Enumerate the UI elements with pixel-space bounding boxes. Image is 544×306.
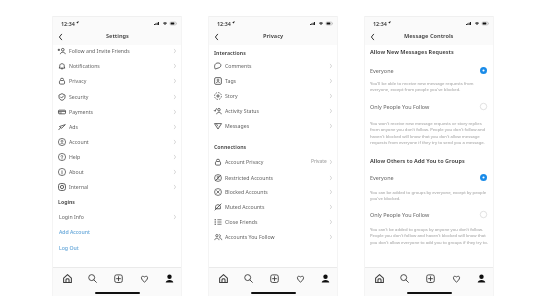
staticText: Message Controls xyxy=(404,32,454,40)
staticText: Logins xyxy=(58,198,75,205)
button[interactable]: Messages xyxy=(208,118,338,133)
staticText: Tags xyxy=(225,77,237,84)
staticText: About xyxy=(69,168,84,175)
button[interactable]: Back xyxy=(54,30,67,43)
button[interactable]: Back xyxy=(366,30,379,43)
button[interactable]: Notifications xyxy=(52,58,182,73)
button[interactable]: Back xyxy=(210,30,223,43)
staticText: Accounts You Follow xyxy=(225,233,275,240)
staticText: Payments xyxy=(69,108,94,115)
staticText: You won't receive new message requests o… xyxy=(370,120,482,126)
button[interactable]: Blocked Accounts xyxy=(208,184,338,199)
button[interactable]: Search xyxy=(398,272,410,284)
button[interactable]: Login Info xyxy=(52,209,182,224)
staticText: Internal xyxy=(69,183,89,190)
staticText: Messages xyxy=(225,122,250,129)
staticText: you don't allow everyone to add you to g… xyxy=(370,239,489,245)
button[interactable]: Tags xyxy=(208,73,338,88)
staticText: Private xyxy=(311,158,327,165)
staticText: Close Friends xyxy=(225,218,258,225)
staticText: Activity Status xyxy=(225,107,260,114)
staticText: Allow New Messages Requests xyxy=(370,48,454,55)
button[interactable]: Create xyxy=(268,272,280,284)
staticText: Login Info xyxy=(59,213,84,220)
button[interactable]: Security xyxy=(52,89,182,104)
staticText: you've blocked. xyxy=(370,195,401,201)
button[interactable]: Muted Accounts xyxy=(208,199,338,214)
staticText: Settings xyxy=(106,32,129,40)
staticText: Only People You Follow xyxy=(370,103,430,110)
button[interactable]: Log Out xyxy=(52,240,182,255)
button[interactable]: Internal xyxy=(52,179,182,194)
staticText: Connections xyxy=(214,143,247,150)
button[interactable]: About xyxy=(52,164,182,179)
button[interactable]: Comments xyxy=(208,58,338,73)
staticText: 12:34 xyxy=(217,20,231,27)
staticText: Privacy xyxy=(69,77,87,84)
staticText: 12:34 xyxy=(373,20,387,27)
button[interactable]: Follow and Invite Friends xyxy=(52,43,182,58)
button[interactable]: Activity Status xyxy=(208,103,338,118)
staticText: Comments xyxy=(225,62,252,69)
staticText: Allow Others to Add You to Groups xyxy=(370,157,465,164)
staticText: Follow and Invite Friends xyxy=(69,47,130,54)
staticText: Log Out xyxy=(59,244,79,251)
staticText: Ads xyxy=(69,123,78,130)
button[interactable]: Account Privacy xyxy=(208,154,338,169)
staticText: Everyone xyxy=(370,67,394,74)
button[interactable]: Restricted Accounts xyxy=(208,170,338,185)
button[interactable]: Add Account xyxy=(52,224,182,239)
button[interactable]: Story xyxy=(208,88,338,103)
button[interactable]: Ads xyxy=(52,119,182,134)
button[interactable]: Only People You Follow xyxy=(364,99,494,113)
staticText: Privacy xyxy=(263,32,284,40)
staticText: Muted Accounts xyxy=(225,203,265,210)
staticText: Interactions xyxy=(214,49,246,56)
staticText: Blocked Accounts xyxy=(225,188,268,195)
button[interactable]: Activity xyxy=(294,272,306,284)
staticText: You can be added to groups by everyone, … xyxy=(370,189,487,195)
button[interactable]: Help xyxy=(52,149,182,164)
staticText: Account Privacy xyxy=(225,158,264,165)
button[interactable]: Account xyxy=(52,134,182,149)
staticText: Notifications xyxy=(69,62,100,69)
staticText: Restricted Accounts xyxy=(225,174,274,181)
button[interactable]: Profile xyxy=(475,272,487,284)
button[interactable]: Everyone xyxy=(364,170,494,184)
button[interactable]: Create xyxy=(112,272,124,284)
button[interactable]: Payments xyxy=(52,104,182,119)
staticText: Story xyxy=(225,92,238,99)
button[interactable]: Home xyxy=(61,272,73,284)
staticText: You can't be added to groups by anyone y… xyxy=(370,226,484,232)
button[interactable]: Search xyxy=(242,272,254,284)
staticText: Add Account xyxy=(59,228,90,235)
staticText: Everyone xyxy=(370,174,394,181)
staticText: Help xyxy=(69,153,81,160)
staticText: People you don't follow and haven't bloc… xyxy=(370,232,486,238)
button[interactable]: Activity xyxy=(450,272,462,284)
staticText: You'll be able to receive new message re… xyxy=(370,80,474,86)
button[interactable]: Activity xyxy=(138,272,150,284)
button[interactable]: Close Friends xyxy=(208,214,338,229)
button[interactable]: Accounts You Follow xyxy=(208,229,338,244)
button[interactable]: Profile xyxy=(319,272,331,284)
staticText: haven't blocked will know that you don't… xyxy=(370,133,480,139)
staticText: Only People You Follow xyxy=(370,211,430,218)
button[interactable]: Search xyxy=(86,272,98,284)
staticText: Security xyxy=(69,93,89,100)
button[interactable]: Everyone xyxy=(364,63,494,77)
staticText: from anyone you don't follow. People you… xyxy=(370,126,486,132)
button[interactable]: Home xyxy=(373,272,385,284)
button[interactable]: Profile xyxy=(163,272,175,284)
button[interactable]: Home xyxy=(217,272,229,284)
staticText: 12:34 xyxy=(61,20,75,27)
button[interactable]: Create xyxy=(424,272,436,284)
staticText: Account xyxy=(69,138,89,145)
staticText: requests from everyone if they try to se… xyxy=(370,139,485,145)
button[interactable]: Privacy xyxy=(52,73,182,88)
staticText: everyone, except from people you've bloc… xyxy=(370,86,461,92)
button[interactable]: Only People You Follow xyxy=(364,207,494,221)
